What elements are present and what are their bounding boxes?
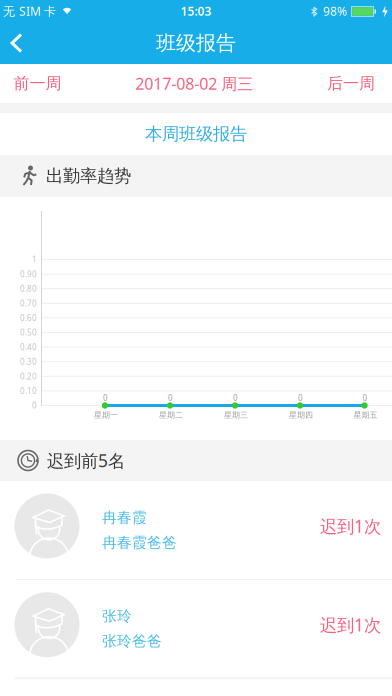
staticText: 张玲	[102, 607, 132, 625]
staticText: 0.30	[20, 356, 37, 367]
staticText: 迟到1次	[320, 514, 381, 537]
staticText: 迟到1次	[320, 613, 381, 636]
staticText: 0	[168, 393, 173, 403]
staticText: 前一周	[13, 74, 61, 93]
button[interactable]: 张玲	[0, 580, 392, 678]
staticText: 张玲爸爸	[102, 632, 162, 650]
staticText: 0	[233, 393, 238, 403]
staticText: 15:03	[180, 3, 211, 19]
button[interactable]: 本周班级报告	[0, 113, 392, 155]
staticText: 1	[32, 254, 37, 265]
staticText: 星期二	[159, 410, 183, 420]
staticText: 0.90	[20, 269, 37, 279]
button[interactable]: 返回	[0, 22, 30, 64]
staticText: 班级报告	[156, 31, 236, 55]
staticText: 0.20	[20, 371, 37, 382]
staticText: 后一周	[327, 74, 375, 93]
staticText: 星期一	[94, 410, 118, 420]
staticText: 星期四	[289, 410, 313, 420]
staticText: 98%	[323, 3, 347, 19]
staticText: 0	[103, 393, 108, 403]
staticText: 0.60	[20, 313, 37, 323]
staticText: 星期五	[353, 410, 377, 420]
staticText: 星期三	[224, 410, 248, 420]
staticText: 0	[32, 400, 37, 411]
staticText: 0	[298, 393, 303, 403]
staticText: 0	[362, 393, 367, 403]
staticText: 出勤率趋势	[46, 165, 131, 187]
staticText: 0.70	[20, 298, 37, 309]
staticText: 0.50	[20, 327, 37, 338]
staticText: 2017-08-02 周三	[135, 73, 253, 94]
staticText: 冉春霞	[102, 508, 147, 526]
button[interactable]: 冉春霞	[0, 481, 392, 579]
button[interactable]: 前一周	[0, 65, 61, 102]
staticText: 迟到前5名	[47, 449, 125, 472]
staticText: 0.40	[20, 342, 37, 352]
staticText: 0.80	[20, 283, 37, 294]
staticText: 冉春霞爸爸	[102, 533, 177, 551]
button[interactable]: 后一周	[327, 65, 392, 102]
staticText: 无 SIM 卡	[3, 3, 56, 19]
staticText: 0.10	[20, 386, 37, 396]
staticText: 本周班级报告	[145, 123, 247, 145]
